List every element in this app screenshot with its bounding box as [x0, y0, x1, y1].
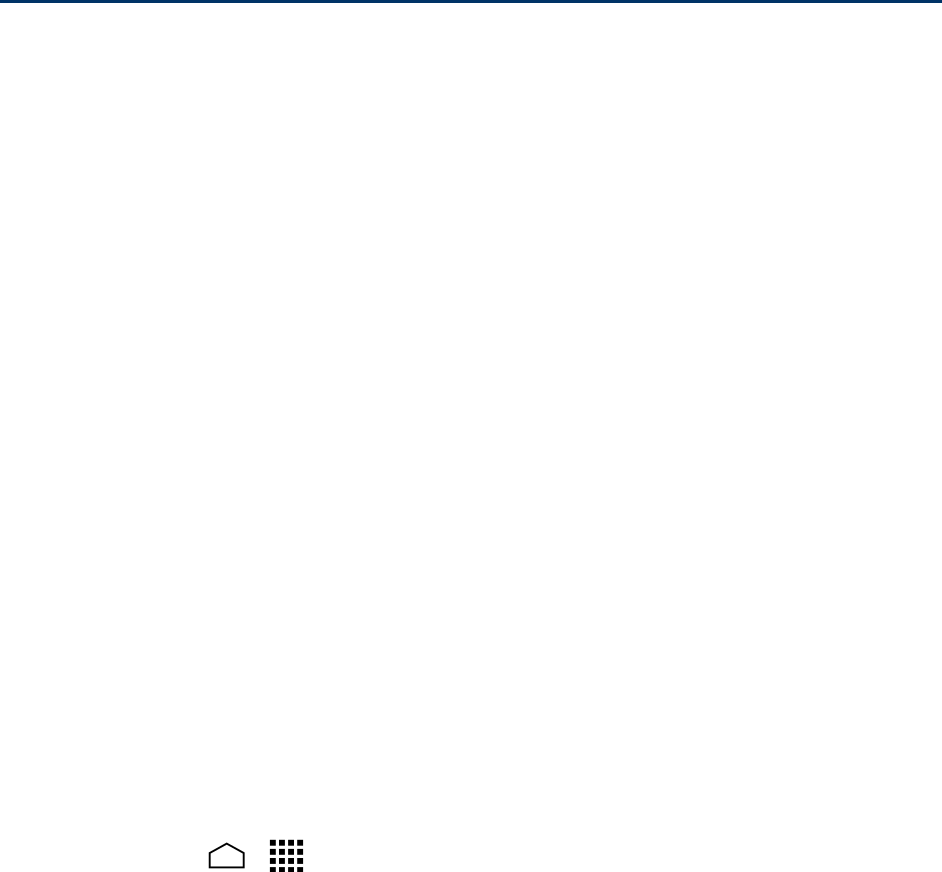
button[interactable]: All apps	[262, 832, 310, 872]
button[interactable]: Home	[201, 834, 253, 872]
